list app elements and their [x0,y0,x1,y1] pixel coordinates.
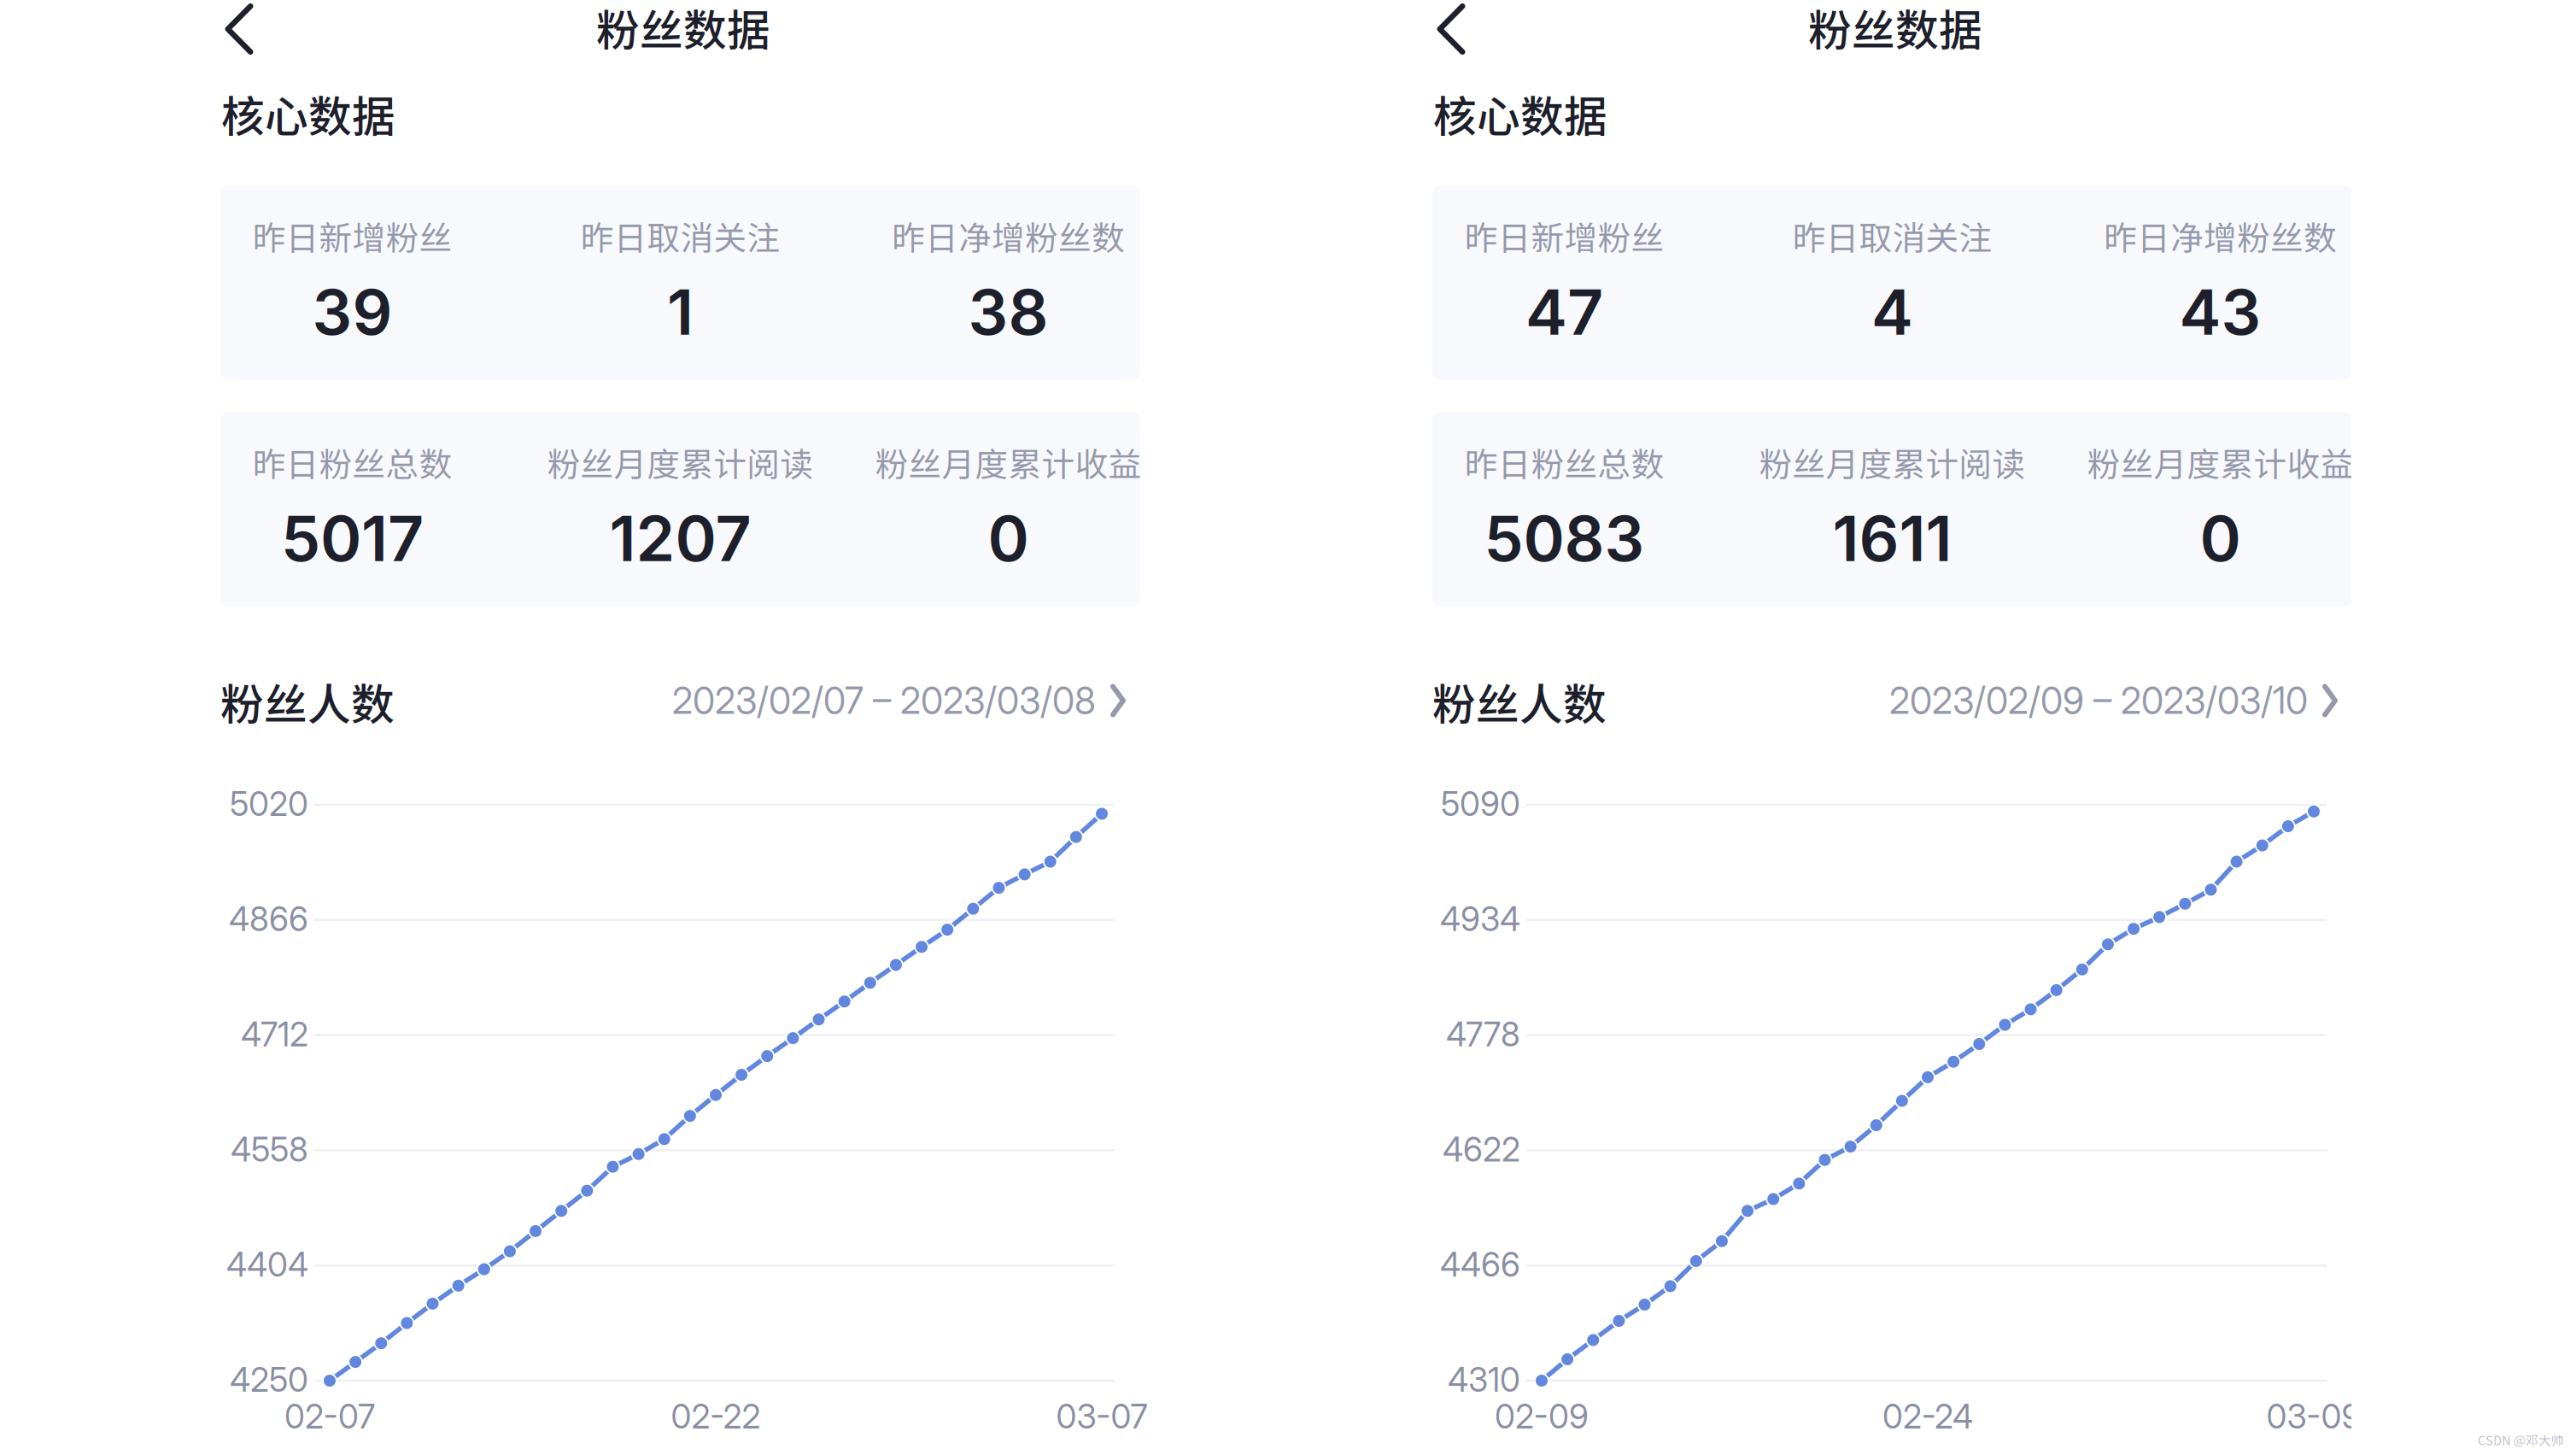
staticText: 4778 [1446,1014,1520,1054]
staticText: 昨日取消关注 [580,212,780,260]
staticText: 02-09 [1495,1397,1589,1437]
staticText: 4 [1871,274,1913,350]
staticText: 粉丝数据 [1808,0,1982,59]
staticText: 昨日净增粉丝数 [892,212,1125,260]
staticText: 5017 [281,500,424,576]
staticText: 昨日取消关注 [1792,212,1992,260]
staticText: 2023/02/07 – 2023/03/08 [672,679,1096,723]
button[interactable]: 粉丝人数 [1436,665,2357,738]
staticText: 粉丝人数 [1432,670,1607,733]
staticText: 03-09 [2266,1397,2361,1437]
staticText: 核心数据 [1433,82,1607,145]
staticText: 4712 [241,1014,308,1054]
button[interactable]: Back [1415,0,1487,77]
staticText: 38 [968,274,1048,350]
staticText: 昨日粉丝总数 [252,438,452,486]
staticText: 昨日新增粉丝 [1464,212,1664,260]
staticText: 昨日净增粉丝数 [2104,212,2337,260]
staticText: 4866 [229,899,308,939]
staticText: 昨日新增粉丝 [252,212,452,260]
staticText: 核心数据 [221,82,395,145]
staticText: 5020 [230,784,308,824]
staticText: 粉丝月度累计阅读 [547,438,814,486]
staticText: 43 [2179,274,2261,350]
staticText: 4250 [230,1360,308,1400]
staticText: 粉丝人数 [220,670,395,733]
staticText: 39 [312,274,392,350]
staticText: 2023/02/09 – 2023/03/10 [1889,679,2308,723]
staticText: 02-24 [1882,1397,1973,1437]
staticText: 粉丝数据 [596,0,770,59]
staticText: 4934 [1440,899,1520,939]
staticText: 4466 [1440,1245,1520,1285]
staticText: 5083 [1484,500,1645,576]
staticText: 4310 [1448,1360,1520,1400]
staticText: 昨日粉丝总数 [1464,438,1664,486]
staticText: 粉丝月度累计收益 [2087,438,2354,486]
button[interactable]: Back [203,0,275,77]
staticText: 02-22 [671,1397,761,1437]
staticText: 4558 [231,1129,308,1169]
staticText: CSDN @邓大帅 [2478,1431,2564,1449]
staticText: 0 [988,500,1029,576]
staticText: 4404 [226,1245,308,1285]
staticText: 1 [667,274,694,350]
staticText: 4622 [1443,1129,1520,1169]
staticText: 03-07 [1056,1397,1147,1437]
staticText: 0 [2200,500,2241,576]
button[interactable]: 粉丝人数 [224,665,1145,738]
staticText: 1207 [609,500,751,576]
staticText: 47 [1525,274,1603,350]
staticText: 5090 [1441,784,1520,824]
staticText: 1611 [1832,500,1952,576]
staticText: 粉丝月度累计收益 [875,438,1142,486]
staticText: 02-07 [284,1397,375,1437]
staticText: 粉丝月度累计阅读 [1759,438,2026,486]
